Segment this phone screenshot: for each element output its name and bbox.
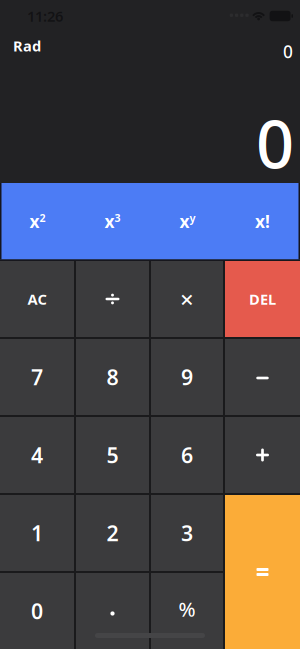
button[interactable]: 7 [0, 339, 74, 415]
button[interactable]: Add [225, 417, 300, 493]
staticText: 0 [283, 40, 293, 63]
staticText: Rad [13, 36, 41, 55]
button[interactable]: x2 [0, 183, 75, 259]
staticText: 3 [181, 519, 193, 547]
staticText: x3 [104, 210, 120, 233]
button[interactable]: AC [0, 261, 74, 337]
staticText: AC [27, 289, 46, 309]
button[interactable]: 3 [151, 495, 223, 571]
staticText: 1 [31, 519, 43, 547]
staticText: % [178, 596, 195, 622]
staticText: DEL [249, 289, 276, 309]
staticText: 6 [181, 441, 193, 469]
button[interactable]: Decimal point [76, 573, 149, 649]
button[interactable]: 5 [76, 417, 149, 493]
button[interactable]: DEL [225, 261, 300, 337]
button[interactable]: 1 [0, 495, 74, 571]
staticText: 4 [31, 441, 43, 469]
staticText: × [180, 283, 194, 315]
staticText: 2 [106, 519, 118, 547]
staticText: 0 [31, 597, 43, 625]
button[interactable]: Divide [76, 261, 149, 337]
button[interactable]: % [151, 573, 223, 649]
button[interactable]: 0 [0, 573, 74, 649]
staticText: 0 [256, 98, 294, 187]
button[interactable]: xy [150, 183, 225, 259]
button[interactable]: Equals [225, 495, 300, 649]
staticText: 9 [181, 363, 193, 391]
staticText: x! [255, 210, 270, 233]
button[interactable]: x! [225, 183, 300, 259]
staticText: x2 [29, 210, 45, 233]
button[interactable]: 2 [76, 495, 149, 571]
staticText: 8 [106, 363, 118, 391]
button[interactable]: 4 [0, 417, 74, 493]
button[interactable]: × [151, 261, 223, 337]
staticText: 7 [31, 363, 43, 391]
button[interactable]: 8 [76, 339, 149, 415]
button[interactable]: Subtract [225, 339, 300, 415]
staticText: 5 [106, 441, 118, 469]
button[interactable]: 6 [151, 417, 223, 493]
staticText: xy [179, 210, 195, 233]
staticText: 11:26 [27, 6, 63, 26]
button[interactable]: 9 [151, 339, 223, 415]
button[interactable]: x3 [75, 183, 150, 259]
